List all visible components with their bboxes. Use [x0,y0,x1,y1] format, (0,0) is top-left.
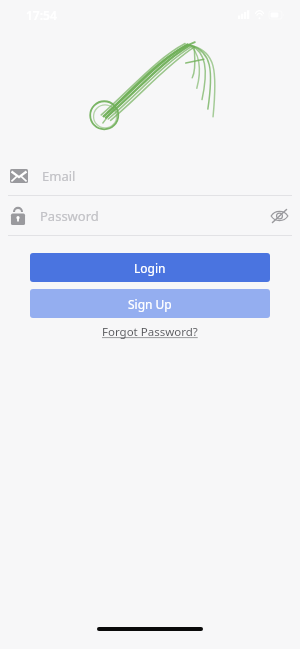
staticText: Login [134,260,166,276]
staticText: Email [42,167,290,185]
staticText: Sign Up [128,296,172,312]
button[interactable]: Forgot Password? [100,323,200,341]
button[interactable]: Sign Up [30,289,270,318]
other: Email [10,169,28,183]
button[interactable]: Password [0,196,300,235]
staticText: Forgot Password? [102,324,198,340]
staticText: 17:54 [26,7,57,23]
other: Password [10,206,26,225]
button[interactable]: Email [0,156,300,195]
staticText: Password [40,207,268,225]
button[interactable]: Show password [268,205,290,227]
button[interactable]: Login [30,253,270,282]
